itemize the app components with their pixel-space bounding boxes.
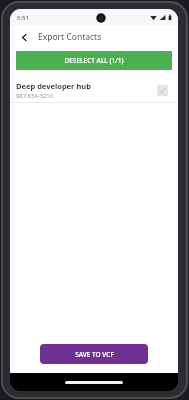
button[interactable]: Back [15, 28, 33, 46]
button[interactable]: DESELECT ALL (1/1) [16, 51, 172, 70]
button[interactable]: Select contact [154, 82, 170, 98]
staticText: 987-654-3210 [16, 92, 53, 100]
staticText: DESELECT ALL (1/1) [64, 56, 124, 65]
staticText: Export Contacts [38, 31, 102, 43]
button[interactable]: SAVE TO VCF [40, 344, 148, 364]
button[interactable]: Deep developer hub [10, 78, 178, 102]
staticText: 5:51 [17, 14, 29, 22]
staticText: Deep developer hub [16, 81, 91, 91]
staticText: SAVE TO VCF [75, 350, 114, 359]
